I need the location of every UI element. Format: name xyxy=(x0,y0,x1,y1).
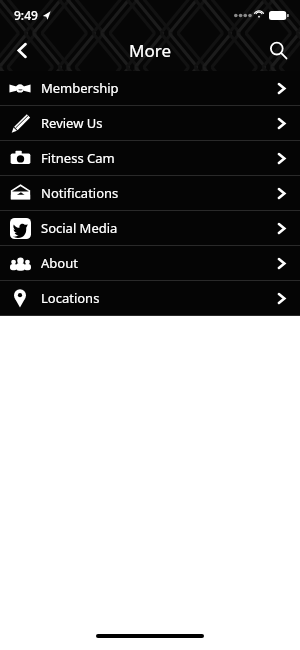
button[interactable]: Fitness Cam xyxy=(0,141,300,175)
staticText: Review Us xyxy=(41,114,103,132)
button[interactable]: Back xyxy=(0,30,44,71)
button[interactable]: Notifications xyxy=(0,176,300,210)
button[interactable]: About xyxy=(0,246,300,280)
button[interactable]: Search xyxy=(256,30,300,71)
button[interactable]: Locations xyxy=(0,281,300,315)
staticText: Locations xyxy=(41,289,100,307)
button[interactable]: Membership xyxy=(0,71,300,105)
button[interactable]: Review Us xyxy=(0,106,300,140)
staticText: Notifications xyxy=(41,184,119,202)
button[interactable]: Social Media xyxy=(0,211,300,245)
staticText: Fitness Cam xyxy=(41,149,115,167)
staticText: Membership xyxy=(41,79,119,97)
staticText: More xyxy=(129,39,171,62)
staticText: Social Media xyxy=(41,219,118,237)
staticText: About xyxy=(41,254,78,272)
staticText: 9:49 xyxy=(14,7,38,23)
